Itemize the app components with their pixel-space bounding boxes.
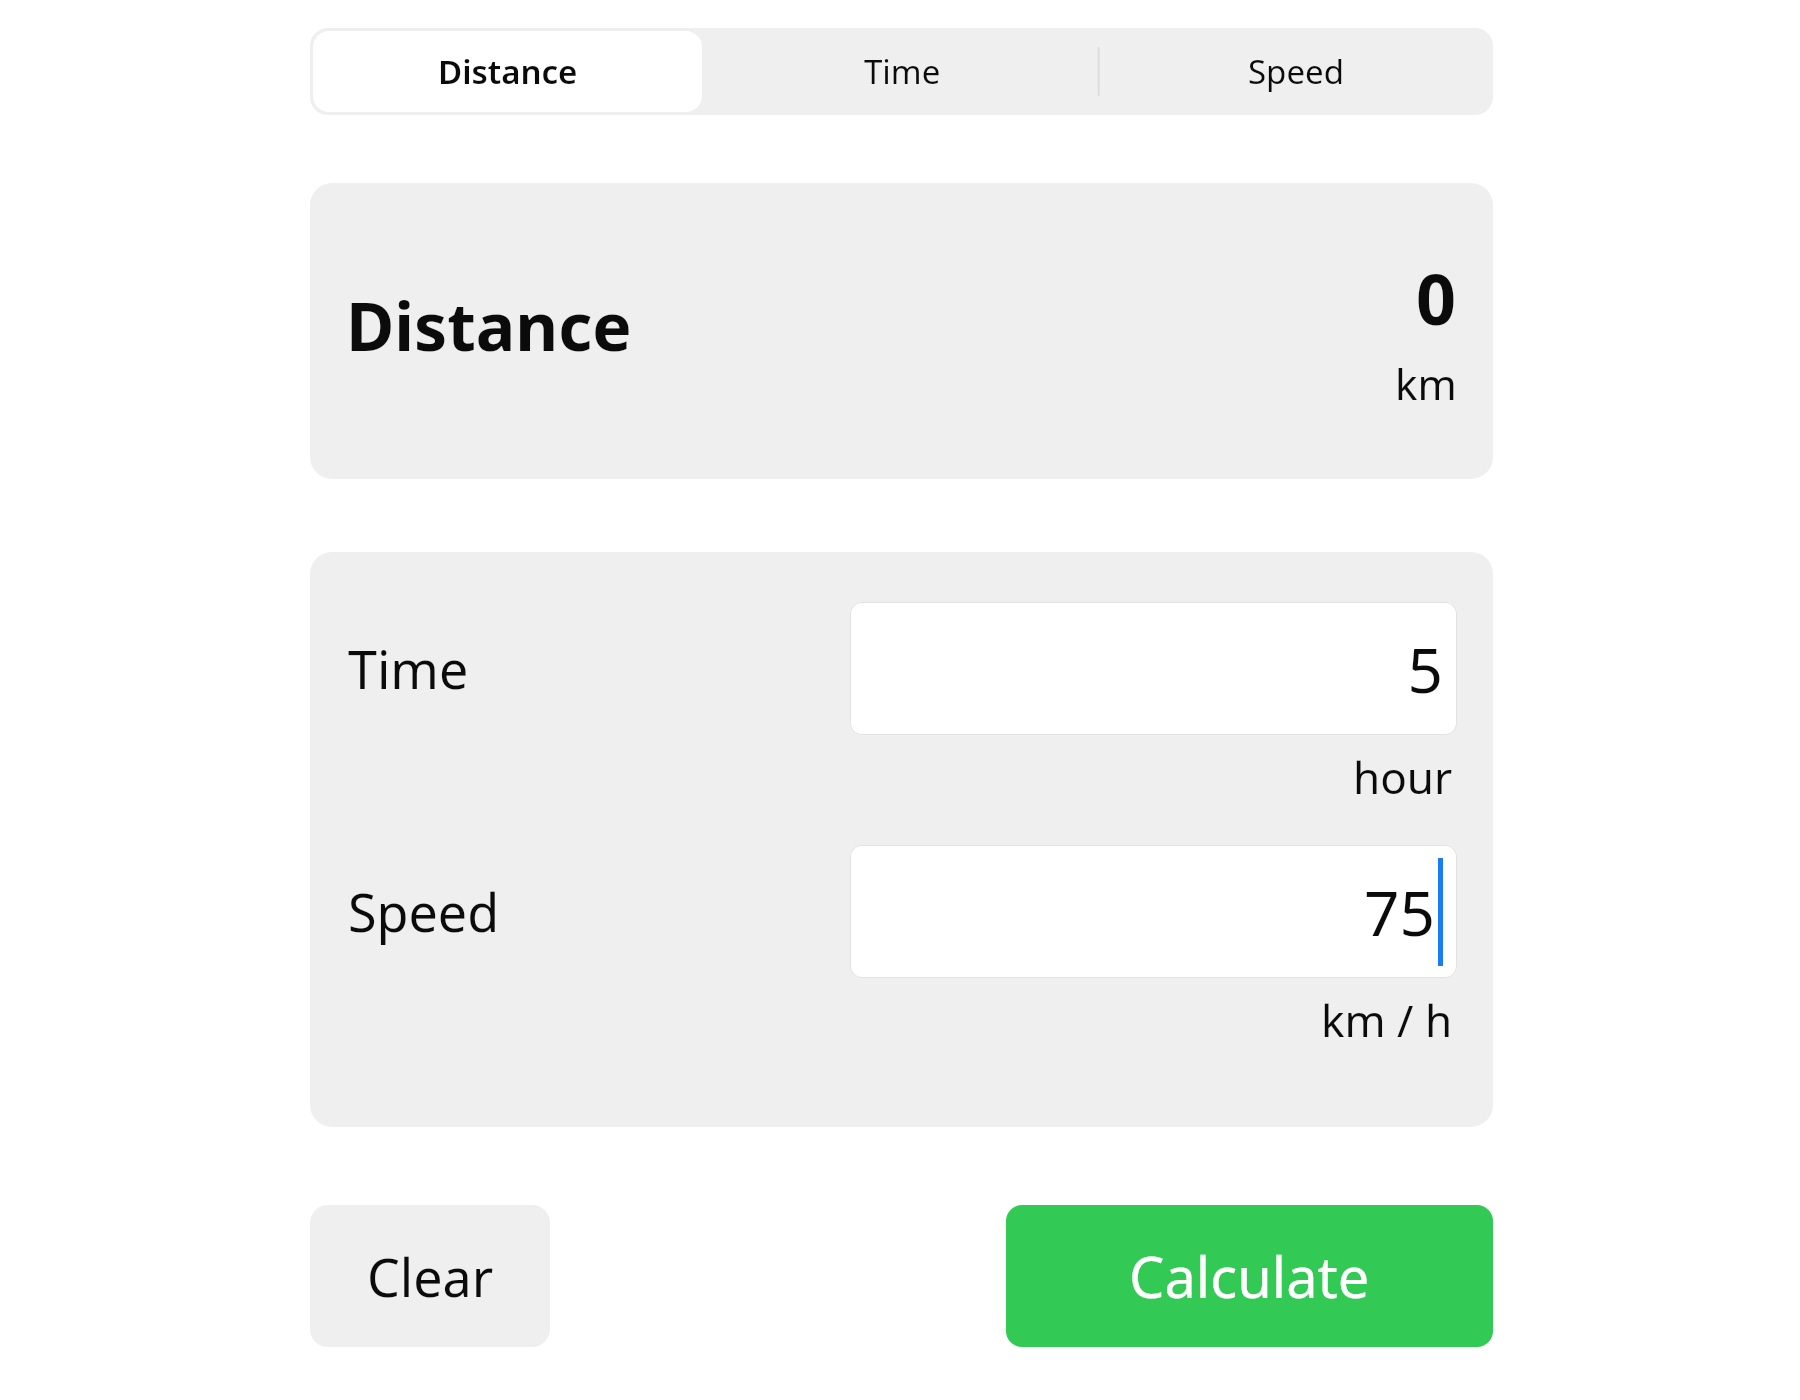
staticText: 75 bbox=[1364, 870, 1435, 954]
button[interactable]: Distance bbox=[313, 31, 702, 112]
staticText: 0 bbox=[1416, 250, 1457, 345]
staticText: Calculate bbox=[1129, 1238, 1370, 1314]
staticText: km / h bbox=[1321, 990, 1453, 1050]
staticText: 5 bbox=[1407, 627, 1443, 711]
staticText: hour bbox=[1353, 747, 1453, 807]
button[interactable]: Calculate bbox=[1006, 1205, 1493, 1347]
staticText: Time bbox=[864, 49, 941, 94]
button[interactable]: 5 bbox=[850, 602, 1457, 735]
staticText: Speed bbox=[1248, 49, 1344, 94]
button[interactable]: Clear bbox=[310, 1205, 550, 1347]
button[interactable]: 75 bbox=[850, 845, 1457, 978]
staticText: Distance bbox=[346, 280, 632, 370]
staticText: Distance bbox=[438, 49, 578, 94]
staticText: Clear bbox=[367, 1241, 494, 1312]
button[interactable]: Time bbox=[705, 28, 1099, 115]
staticText: km bbox=[1395, 355, 1457, 412]
staticText: Time bbox=[348, 633, 469, 704]
button[interactable]: Speed bbox=[1099, 28, 1493, 115]
staticText: Speed bbox=[348, 876, 500, 947]
